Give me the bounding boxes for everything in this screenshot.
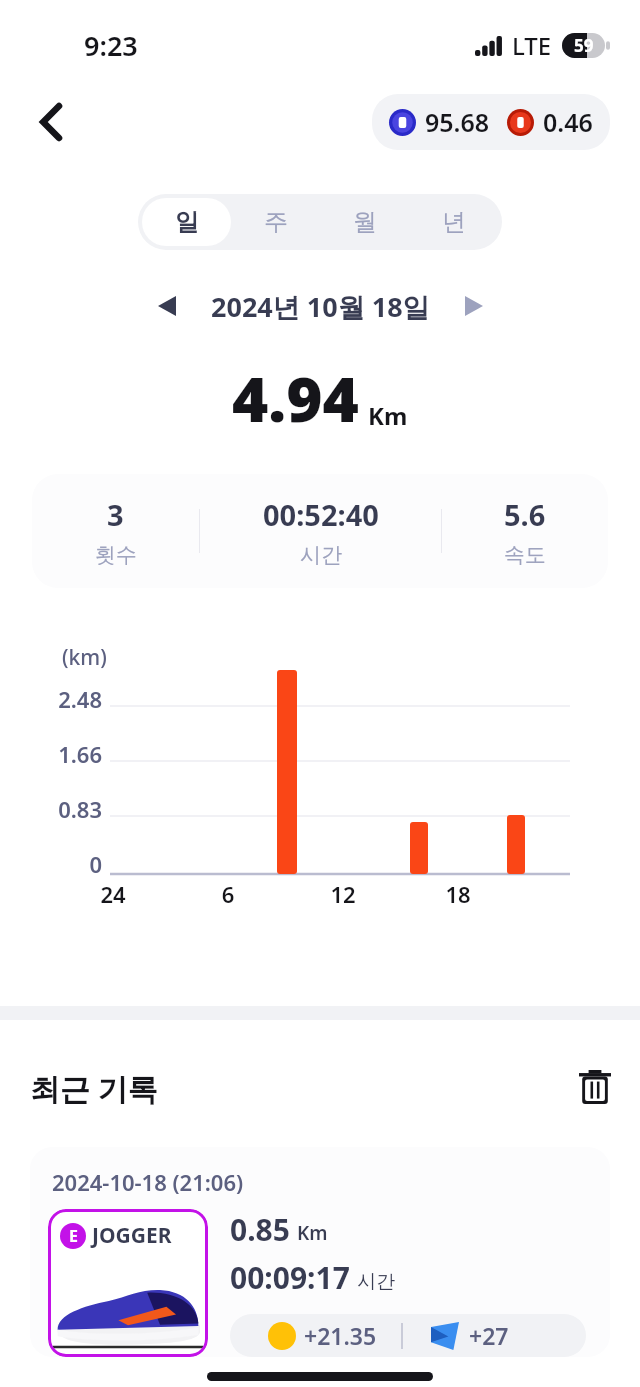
staticText: 95.68 (425, 105, 490, 139)
staticText: 59 (574, 34, 594, 57)
button[interactable]: 3 (32, 474, 608, 588)
staticText: 12 (313, 879, 373, 909)
staticText: Km (297, 1220, 328, 1246)
staticText: 최근 기록 (30, 1068, 158, 1109)
button[interactable]: 주 (231, 198, 320, 246)
staticText: 00:09:17 (230, 1257, 350, 1298)
staticText: LTE (512, 29, 552, 62)
button[interactable]: 일 (142, 198, 231, 246)
staticText: +21.35 (304, 1320, 377, 1351)
staticText: 월 (353, 207, 377, 237)
staticText: 0 (30, 849, 102, 879)
staticText: 0.83 (30, 794, 102, 824)
staticText: 2024년 10월 18일 (211, 288, 430, 325)
staticText: 속도 (504, 542, 546, 568)
staticText: 일 (175, 207, 199, 237)
staticText: 시간 (357, 1270, 395, 1294)
staticText: 0.85 (230, 1209, 290, 1250)
staticText: Km (368, 399, 408, 432)
staticText: 횟수 (95, 542, 137, 568)
staticText: (km) (62, 643, 107, 672)
staticText: 6 (198, 879, 258, 909)
button[interactable]: Previous day (145, 284, 189, 328)
staticText: 18 (428, 879, 488, 909)
staticText: +27 (469, 1320, 509, 1351)
button[interactable]: 년 (409, 198, 498, 246)
button[interactable]: 2024-10-18 (21:06) (30, 1147, 610, 1357)
staticText: JOGGER (92, 1221, 172, 1250)
staticText: 1.66 (30, 739, 102, 769)
staticText: 2024-10-18 (21:06) (52, 1167, 244, 1197)
staticText: 3 (107, 495, 124, 534)
button[interactable]: 월 (320, 198, 409, 246)
button[interactable]: +21.35 (230, 1314, 586, 1357)
staticText: 주 (264, 207, 288, 237)
button[interactable]: Back (24, 94, 80, 150)
staticText: 시간 (300, 542, 342, 568)
staticText: 2.48 (30, 684, 102, 714)
button[interactable]: Delete records (568, 1060, 622, 1114)
staticText: 9:23 (84, 27, 138, 64)
staticText: 24 (83, 879, 143, 909)
staticText: 00:52:40 (263, 495, 379, 534)
staticText: 0.46 (543, 105, 593, 139)
button[interactable]: 95.68 (372, 94, 610, 150)
staticText: 5.6 (504, 495, 546, 534)
staticText: 년 (442, 207, 466, 237)
button[interactable]: Next day (452, 284, 496, 328)
staticText: E (69, 1225, 78, 1247)
staticText: 4.94 (232, 356, 359, 440)
